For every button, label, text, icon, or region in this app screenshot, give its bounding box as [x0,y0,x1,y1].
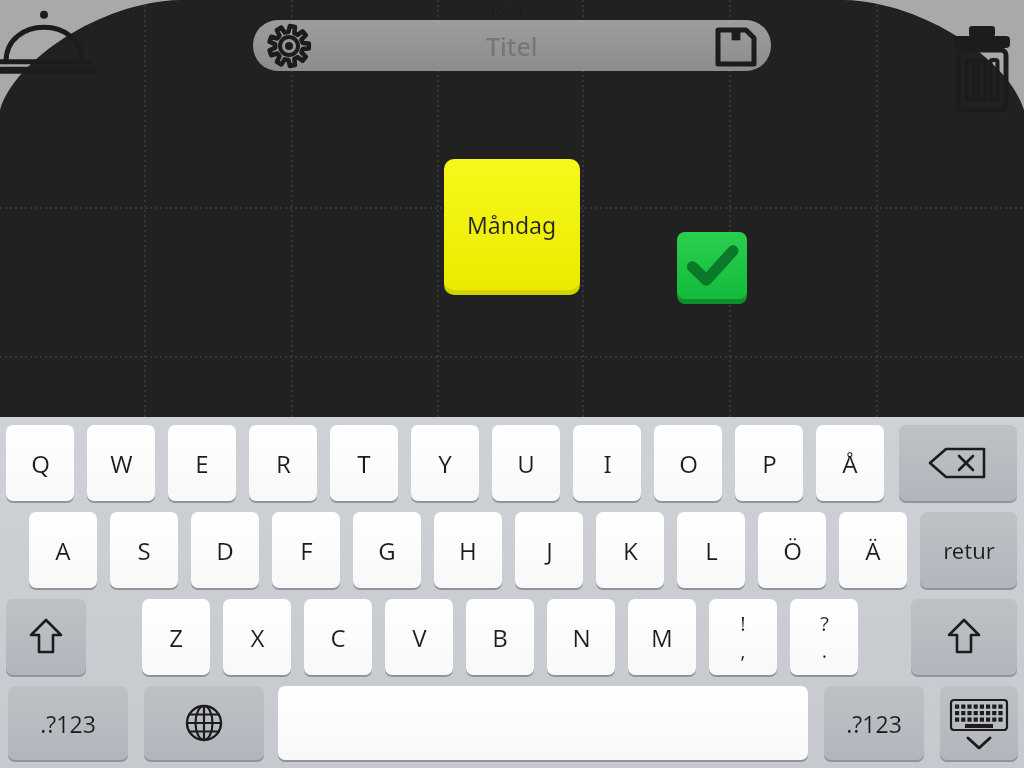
staticText: ? . [820,610,829,664]
button[interactable]: ? . [790,599,858,675]
staticText: O [679,447,698,480]
staticText: .?123 [846,708,902,739]
staticText: Y [438,447,452,480]
staticText: retur [943,535,995,565]
button[interactable]: Å [816,425,884,501]
button[interactable]: Save [714,24,758,68]
button[interactable]: Settings [266,24,312,68]
button[interactable]: Space [278,686,808,760]
button[interactable]: K [596,512,664,588]
button[interactable]: X [223,599,291,675]
staticText: Ä [865,534,881,567]
staticText: F [300,534,313,567]
staticText: K [623,534,638,567]
staticText: .?123 [40,708,96,739]
staticText: Ö [783,534,802,567]
button[interactable]: .?123 [824,686,924,760]
button[interactable]: M [628,599,696,675]
button[interactable]: P [735,425,803,501]
button[interactable]: Titel [253,20,771,71]
staticText: Låst SIM [12,2,65,20]
button[interactable]: .?123 [8,686,128,760]
staticText: N [572,621,591,654]
staticText: I [603,447,612,480]
staticText: ! , [740,610,746,664]
button[interactable]: J [515,512,583,588]
staticText: L [705,534,718,567]
button[interactable]: ! , [709,599,777,675]
button[interactable]: Shift right [911,599,1017,675]
button[interactable]: Z [142,599,210,675]
staticText: E [195,447,209,480]
staticText: R [276,447,291,480]
button[interactable]: C [304,599,372,675]
button[interactable]: Change language [144,686,264,760]
button[interactable]: Serve [0,20,88,78]
button[interactable]: V [385,599,453,675]
button[interactable]: Shift [6,599,86,675]
staticText: M [651,621,673,654]
button[interactable]: O [654,425,722,501]
staticText: W [110,447,133,480]
button[interactable]: H [434,512,502,588]
staticText: U [517,447,535,480]
button[interactable]: I [573,425,641,501]
staticText: A [55,534,71,567]
button[interactable]: B [466,599,534,675]
staticText: Q [31,447,50,480]
button[interactable]: Y [411,425,479,501]
button[interactable]: Ä [839,512,907,588]
button[interactable]: D [191,512,259,588]
button[interactable]: L [677,512,745,588]
button[interactable]: T [330,425,398,501]
button[interactable]: F [272,512,340,588]
staticText: D [216,534,234,567]
button[interactable]: E [168,425,236,501]
staticText: J [546,534,553,567]
button[interactable]: G [353,512,421,588]
button[interactable]: Ö [758,512,826,588]
button[interactable]: U [492,425,560,501]
staticText: C [330,621,346,654]
button[interactable]: N [547,599,615,675]
staticText: S [137,534,151,567]
staticText: T [357,447,371,480]
button[interactable]: A [29,512,97,588]
button[interactable]: W [87,425,155,501]
staticText: Titel [486,29,538,63]
button[interactable]: Backspace [899,425,1017,501]
staticText: Z [169,621,183,654]
button[interactable]: Confirm [677,232,747,304]
staticText: V [412,621,427,654]
staticText: B [492,621,508,654]
button[interactable]: Q [6,425,74,501]
staticText: H [459,534,477,567]
staticText: P [762,447,777,480]
button[interactable]: R [249,425,317,501]
staticText: G [378,534,396,567]
button[interactable]: retur [920,512,1017,588]
staticText: Å [842,447,858,480]
button[interactable]: Delete [944,22,1020,86]
button[interactable]: S [110,512,178,588]
staticText: X [250,621,265,654]
staticText: Måndag [467,209,557,240]
button[interactable]: Hide keyboard [940,686,1018,760]
button[interactable]: Måndag [444,159,580,295]
